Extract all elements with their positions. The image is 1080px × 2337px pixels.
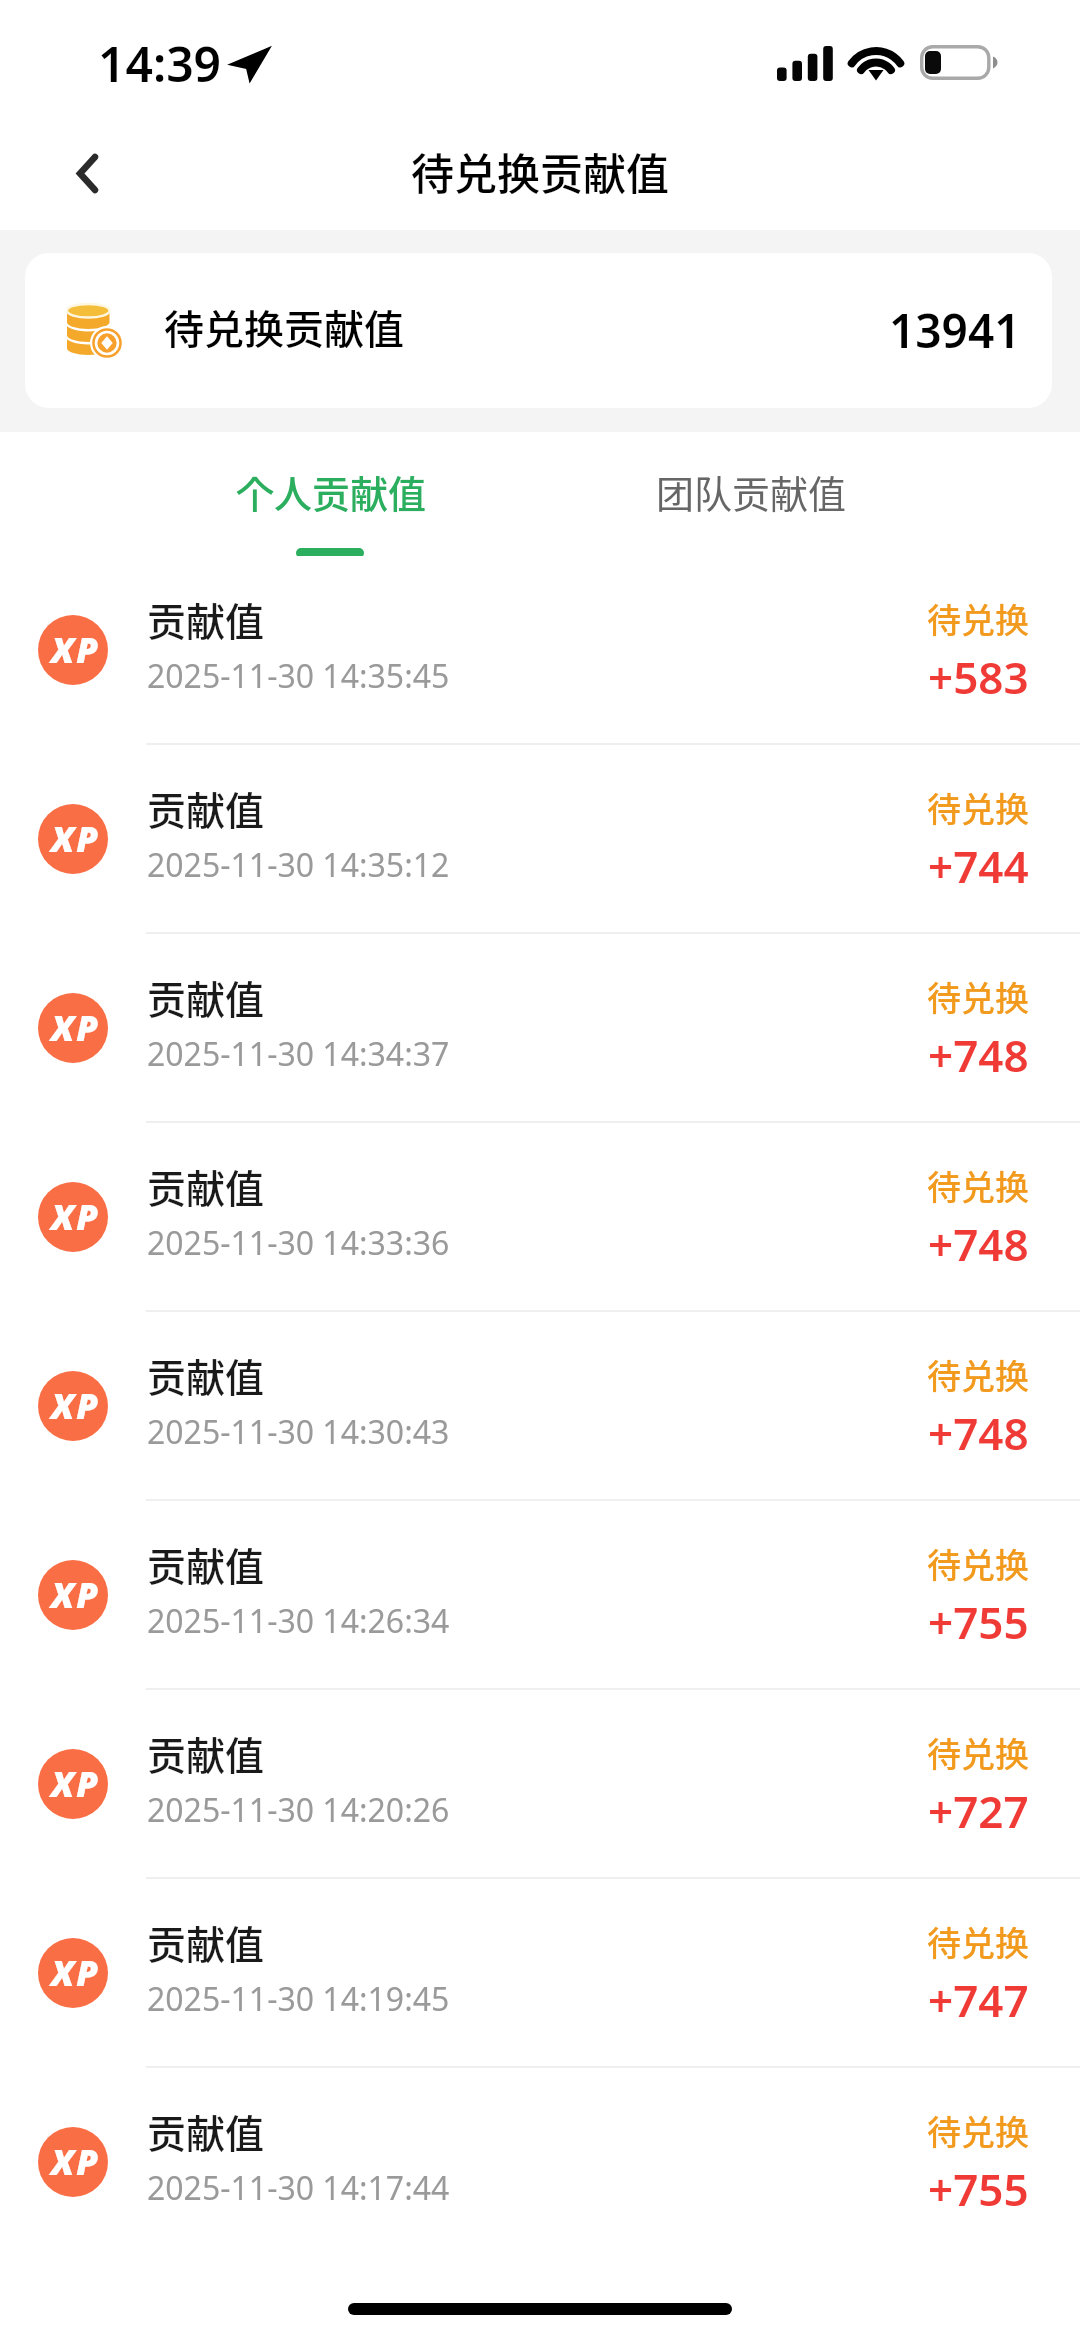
staticText: 2025-11-30 14:19:45 [147, 1977, 450, 2021]
button[interactable]: XP [0, 556, 1080, 743]
staticText: 贡献值 [147, 969, 265, 1025]
button[interactable]: XP [0, 2068, 1080, 2255]
staticText: +748 [928, 1214, 1029, 1274]
staticText: 2025-11-30 14:17:44 [147, 2166, 450, 2210]
staticText: +755 [928, 2159, 1029, 2219]
staticText: 2025-11-30 14:20:26 [147, 1788, 450, 1832]
staticText: +748 [928, 1403, 1029, 1463]
staticText: XP [51, 1193, 101, 1241]
staticText: 2025-11-30 14:35:12 [147, 843, 450, 887]
staticText: 贡献值 [147, 1914, 265, 1970]
staticText: 待兑换 [927, 594, 1029, 643]
staticText: 贡献值 [147, 1158, 265, 1214]
staticText: 待兑换 [927, 1728, 1029, 1777]
button[interactable]: XP [0, 1312, 1080, 1499]
staticText: 贡献值 [147, 2103, 265, 2159]
staticText: 2025-11-30 14:30:43 [147, 1410, 450, 1454]
staticText: 2025-11-30 14:34:37 [147, 1032, 450, 1076]
staticText: 贡献值 [147, 1347, 265, 1403]
button[interactable]: 团队贡献值 [620, 440, 882, 548]
staticText: 贡献值 [147, 1536, 265, 1592]
staticText: XP [51, 1571, 101, 1619]
staticText: 贡献值 [147, 1725, 265, 1781]
staticText: 贡献值 [147, 780, 265, 836]
button[interactable]: Back [44, 131, 132, 219]
staticText: 待兑换 [927, 1350, 1029, 1399]
staticText: XP [51, 1004, 101, 1052]
button[interactable]: XP [0, 745, 1080, 932]
staticText: 13941 [889, 299, 1021, 362]
staticText: +583 [928, 647, 1029, 707]
staticText: 待兑换 [927, 1539, 1029, 1588]
staticText: 待兑换贡献值 [164, 298, 404, 356]
staticText: 贡献值 [147, 591, 265, 647]
staticText: XP [51, 815, 101, 863]
staticText: +748 [928, 1025, 1029, 1085]
staticText: XP [51, 1382, 101, 1430]
staticText: 待兑换 [927, 1161, 1029, 1210]
staticText: XP [51, 626, 101, 674]
staticText: XP [51, 1949, 101, 1997]
button[interactable]: XP [0, 1501, 1080, 1688]
staticText: +744 [928, 836, 1029, 896]
staticText: 个人贡献值 [236, 464, 427, 519]
staticText: 14:39 [98, 31, 222, 96]
staticText: 团队贡献值 [656, 464, 847, 519]
staticText: +727 [928, 1781, 1029, 1841]
button[interactable]: XP [0, 1123, 1080, 1310]
staticText: 2025-11-30 14:35:45 [147, 654, 450, 698]
button[interactable]: XP [0, 934, 1080, 1121]
staticText: 待兑换贡献值 [411, 140, 669, 202]
button[interactable]: 个人贡献值 [200, 440, 462, 548]
staticText: +747 [928, 1970, 1029, 2030]
staticText: XP [51, 1760, 101, 1808]
button[interactable]: XP [0, 1879, 1080, 2066]
button[interactable]: XP [0, 1690, 1080, 1877]
staticText: +755 [928, 1592, 1029, 1652]
staticText: 2025-11-30 14:33:36 [147, 1221, 450, 1265]
staticText: 待兑换 [927, 1917, 1029, 1966]
button[interactable]: 待兑换贡献值 [25, 253, 1052, 408]
staticText: 待兑换 [927, 972, 1029, 1021]
staticText: 待兑换 [927, 2106, 1029, 2155]
staticText: 2025-11-30 14:26:34 [147, 1599, 450, 1643]
staticText: XP [51, 2138, 101, 2186]
staticText: 待兑换 [927, 783, 1029, 832]
